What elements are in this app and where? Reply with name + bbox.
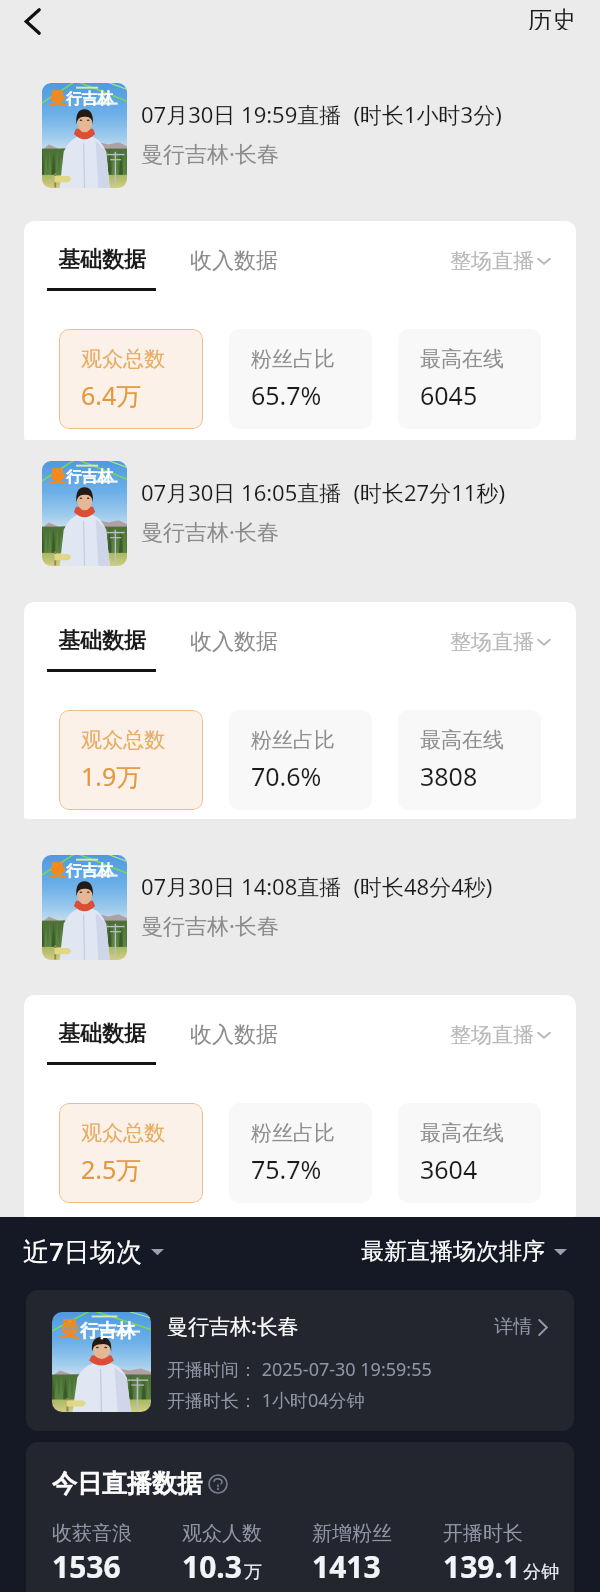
staticText: 整场直播 [450, 1022, 534, 1048]
staticText: 开播时间： 2025-07-30 19:59:55 [167, 1357, 432, 1382]
button[interactable]: 最高在线 [398, 329, 541, 429]
button[interactable]: 详情 [494, 1315, 548, 1339]
staticText: 2.5万 [81, 1152, 142, 1186]
staticText: 1.9万 [81, 759, 142, 793]
button[interactable]: 最高在线 [398, 710, 541, 810]
staticText: (时长27分11秒) [342, 477, 505, 507]
button[interactable]: Back [14, 3, 50, 39]
staticText: 6045 [420, 378, 478, 412]
staticText: 万 [244, 1561, 262, 1584]
button[interactable]: 粉丝占比 [229, 710, 372, 810]
staticText: 10.3 [182, 1546, 242, 1587]
staticText: 详情 [494, 1315, 532, 1339]
staticText: 收获音浪 [52, 1521, 132, 1546]
staticText: 曼 [49, 860, 66, 881]
staticText: 整场直播 [450, 629, 534, 655]
staticText: 观众总数 [81, 727, 165, 753]
staticText: 行吉林 [66, 861, 114, 881]
staticText: 75.7% [251, 1152, 322, 1186]
staticText: 基础数据 [58, 627, 146, 655]
staticText: 最高在线 [420, 727, 504, 753]
staticText: 开播时长 [443, 1521, 523, 1546]
staticText: 3808 [420, 759, 478, 793]
staticText: 07月30日 14:08直播 [141, 871, 342, 901]
button[interactable]: 最高在线 [398, 1103, 541, 1203]
staticText: 07月30日 16:05直播 [141, 477, 342, 507]
staticText: 新增粉丝 [312, 1521, 392, 1546]
staticText: 最高在线 [420, 1120, 504, 1146]
staticText: 基础数据 [58, 1020, 146, 1048]
staticText: 收入数据 [190, 628, 278, 656]
staticText: 6.4万 [81, 378, 142, 412]
button[interactable]: 观众总数 [59, 1103, 203, 1203]
staticText: 开播时长： 1小时04分钟 [167, 1388, 365, 1413]
button[interactable]: 粉丝占比 [229, 1103, 372, 1203]
button[interactable]: 观众总数 [59, 710, 203, 810]
staticText: 基础数据 [58, 246, 146, 274]
staticText: 139.1 [443, 1546, 521, 1587]
staticText: 1413 [312, 1546, 381, 1587]
button[interactable]: 曼 [0, 855, 600, 960]
staticText: 行吉林 [66, 89, 114, 109]
button[interactable]: 整场直播 [450, 627, 551, 655]
staticText: 曼 [60, 1317, 80, 1342]
staticText: 曼行吉林·长春 [141, 910, 279, 940]
staticText: 3604 [420, 1152, 478, 1186]
staticText: (时长48分4秒) [342, 871, 493, 901]
staticText: 粉丝占比 [251, 727, 335, 753]
staticText: 行吉林 [66, 467, 114, 487]
staticText: 观众总数 [81, 1120, 165, 1146]
staticText: 粉丝占比 [251, 346, 335, 372]
staticText: 65.7% [251, 378, 322, 412]
button[interactable]: 最新直播场次排序 [361, 1237, 567, 1266]
staticText: 曼 [49, 466, 66, 487]
button[interactable]: 观众总数 [59, 329, 203, 429]
staticText: 曼行吉林:长春 [167, 1312, 299, 1341]
staticText: 近7日场次 [23, 1233, 142, 1269]
staticText: 今日直播数据 [52, 1468, 202, 1499]
button[interactable]: 基础数据 [47, 1020, 156, 1065]
staticText: 观众总数 [81, 346, 165, 372]
staticText: 分钟 [523, 1561, 559, 1584]
staticText: 整场直播 [450, 248, 534, 274]
button[interactable]: 收入数据 [190, 627, 278, 656]
button[interactable]: 粉丝占比 [229, 329, 372, 429]
button[interactable]: 曼 [0, 461, 600, 566]
staticText: 曼行吉林·长春 [141, 516, 279, 546]
button[interactable]: 曼 [0, 83, 600, 188]
button[interactable]: 曼 [26, 1290, 574, 1431]
staticText: 70.6% [251, 759, 322, 793]
button[interactable]: 整场直播 [450, 1020, 551, 1048]
staticText: 收入数据 [190, 247, 278, 275]
staticText: 粉丝占比 [251, 1120, 335, 1146]
button[interactable]: 收入数据 [190, 246, 278, 275]
staticText: 最高在线 [420, 346, 504, 372]
staticText: 曼行吉林·长春 [141, 138, 279, 168]
staticText: 历史 [527, 5, 577, 30]
button[interactable]: 基础数据 [47, 627, 156, 672]
staticText: 最新直播场次排序 [361, 1237, 545, 1266]
staticText: 收入数据 [190, 1021, 278, 1049]
button[interactable]: 整场直播 [450, 246, 551, 274]
staticText: 1536 [52, 1546, 121, 1587]
button[interactable]: 历史 [501, 0, 600, 38]
button[interactable]: 基础数据 [47, 246, 156, 291]
staticText: 观众人数 [182, 1521, 262, 1546]
staticText: 曼 [49, 88, 66, 109]
staticText: (时长1小时3分) [342, 99, 502, 129]
button[interactable]: 近7日场次 [23, 1233, 164, 1269]
button[interactable]: 收入数据 [190, 1020, 278, 1049]
staticText: 07月30日 19:59直播 [141, 99, 342, 129]
staticText: 行吉林 [80, 1319, 135, 1342]
